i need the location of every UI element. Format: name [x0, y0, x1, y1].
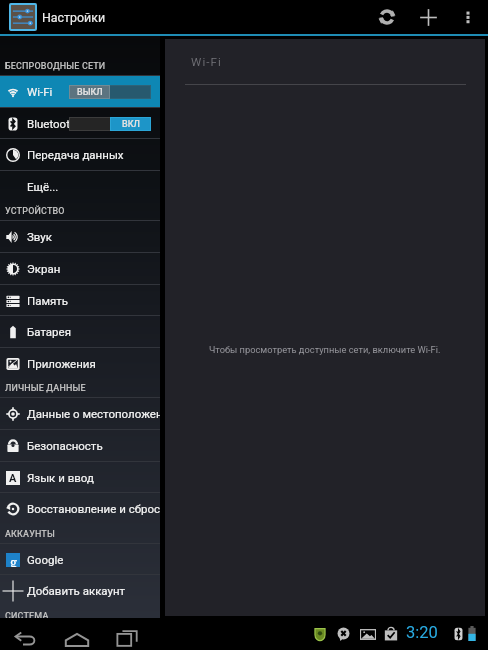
button[interactable]: Память — [0, 285, 160, 316]
staticText: Настройки — [42, 10, 106, 25]
staticText: Добавить аккаунт — [27, 584, 126, 597]
staticText: Звук — [27, 230, 52, 243]
button[interactable]: Добавить аккаунт — [0, 575, 160, 606]
staticText: Язык и ввод — [27, 471, 94, 484]
button[interactable]: Передача данных — [0, 139, 160, 170]
button[interactable]: Безопасность — [0, 430, 160, 461]
staticText: Чтобы просмотреть доступные сети, включи… — [209, 344, 441, 355]
button[interactable]: Home — [54, 618, 99, 650]
staticText: ВЫКЛ — [77, 87, 103, 98]
staticText: Wi-Fi — [191, 55, 223, 69]
button[interactable]: Звук — [0, 221, 160, 252]
button[interactable]: Ещё... — [0, 171, 160, 202]
staticText: 3:20 — [406, 623, 438, 642]
staticText: ВКЛ — [122, 119, 140, 130]
staticText: Приложения — [27, 357, 96, 370]
staticText: Восстановление и сброс — [27, 502, 160, 515]
button[interactable]: Recent apps — [105, 618, 150, 650]
button[interactable]: Данные о местоположении — [0, 398, 160, 429]
button[interactable]: Wi-Fi — [0, 76, 160, 107]
staticText: A — [9, 472, 17, 485]
button[interactable]: More options — [448, 0, 488, 34]
staticText: Google — [27, 553, 64, 566]
staticText: ЛИЧНЫЕ ДАННЫЕ — [5, 383, 86, 394]
staticText: Wi-Fi — [27, 85, 53, 98]
staticText: Данные о местоположении — [27, 407, 160, 420]
staticText: Безопасность — [27, 439, 103, 452]
staticText: УСТРОЙСТВО — [5, 206, 65, 217]
button[interactable]: Bluetooth — [0, 108, 160, 139]
button[interactable]: Приложения — [0, 348, 160, 379]
staticText: АККАУНТЫ — [5, 529, 55, 540]
staticText: БЕСПРОВОДНЫЕ СЕТИ — [5, 61, 106, 72]
button[interactable]: Scan for networks — [366, 0, 408, 34]
staticText: Bluetooth — [27, 117, 77, 130]
staticText: Экран — [27, 262, 61, 275]
staticText: Память — [27, 294, 69, 307]
button[interactable]: Батарея — [0, 316, 160, 347]
staticText: СИСТЕМА — [5, 611, 49, 618]
staticText: Передача данных — [27, 148, 124, 161]
button[interactable]: Экран — [0, 253, 160, 284]
button[interactable]: Add network — [408, 0, 448, 34]
button[interactable]: A — [0, 462, 160, 493]
button[interactable]: Восстановление и сброс — [0, 493, 160, 524]
staticText: Батарея — [27, 325, 71, 338]
button[interactable]: Back — [3, 618, 48, 650]
staticText: Ещё... — [27, 180, 59, 193]
staticText: g — [10, 553, 17, 567]
button[interactable]: g — [0, 544, 160, 575]
